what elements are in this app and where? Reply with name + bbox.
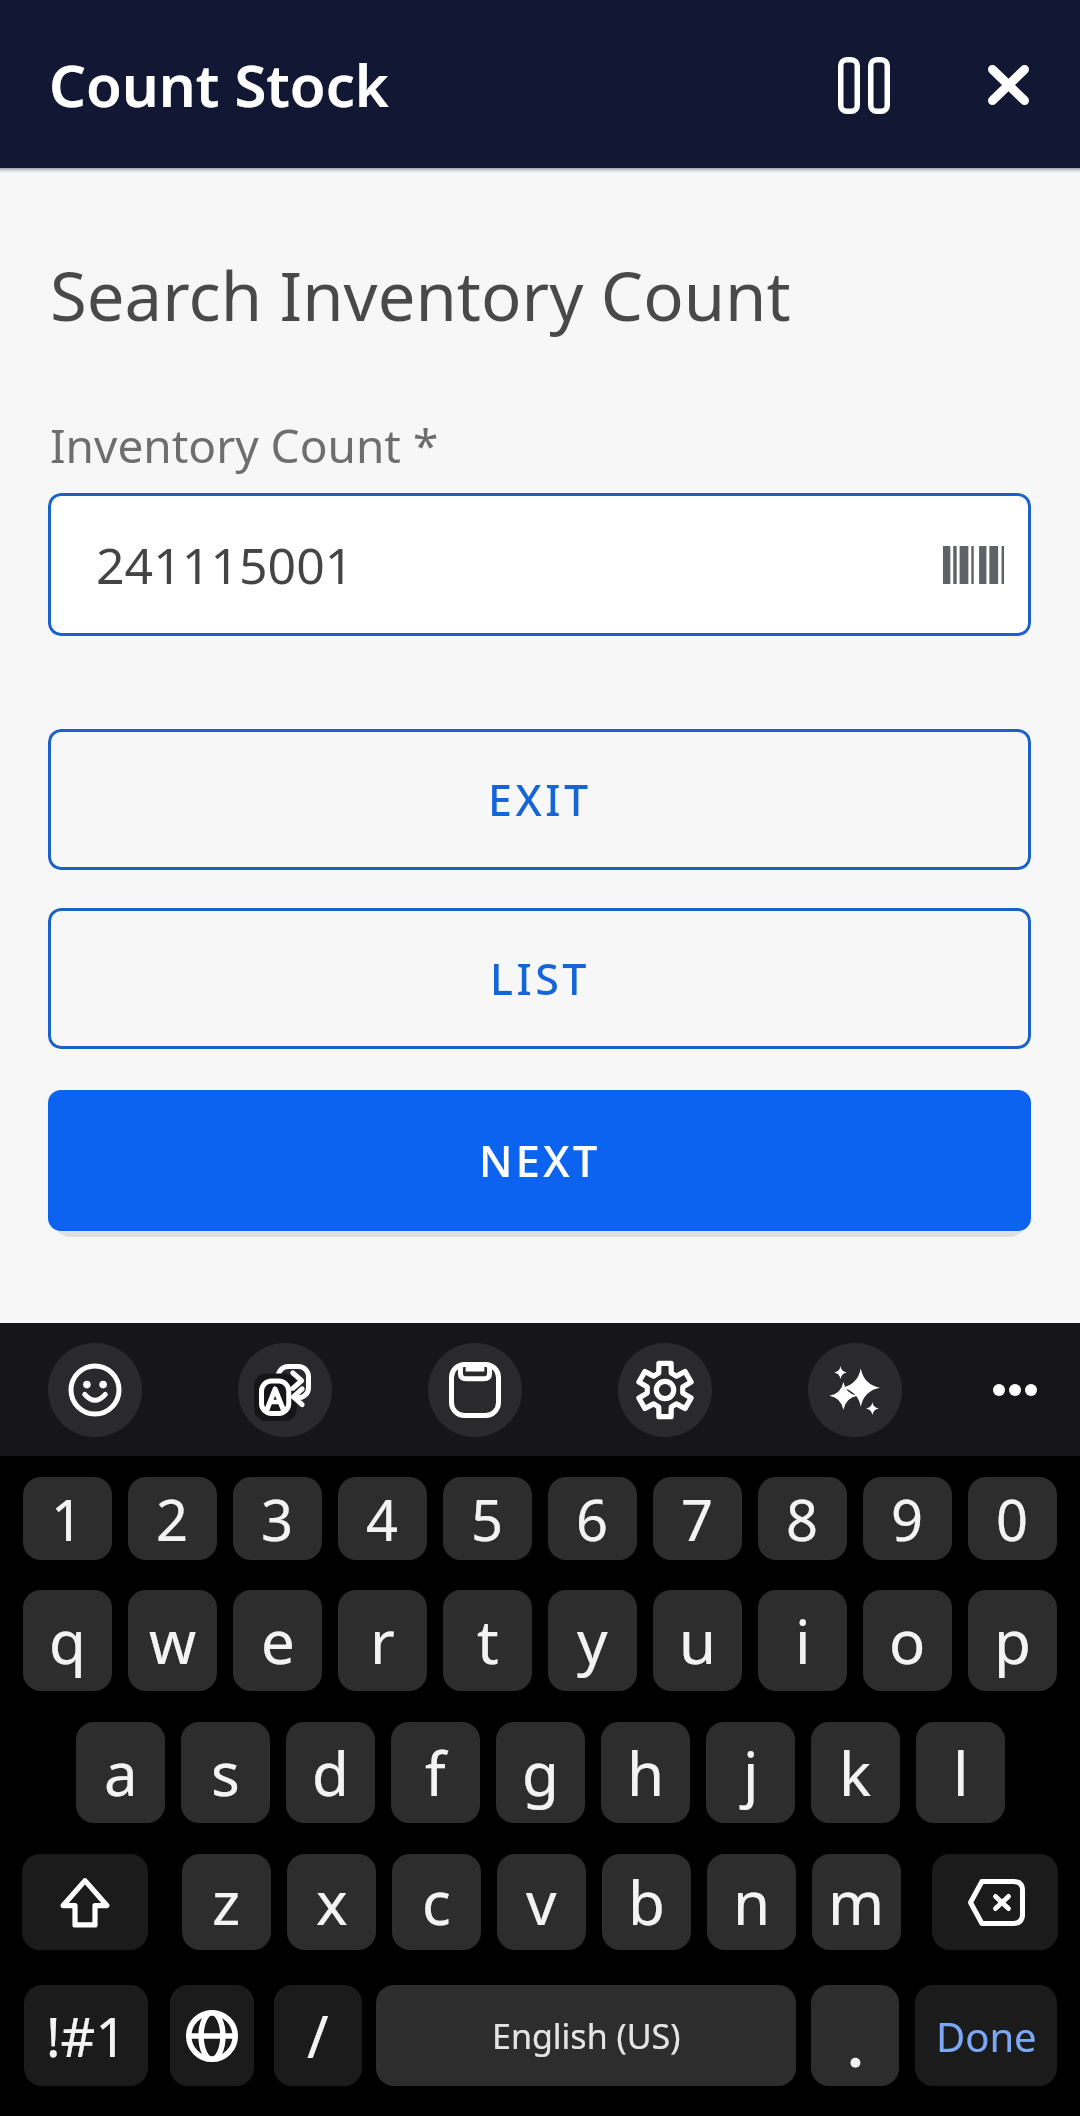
button[interactable]: Settings: [618, 1343, 712, 1437]
staticText: 1: [51, 1481, 84, 1557]
button[interactable]: l: [916, 1722, 1005, 1823]
button[interactable]: Close: [953, 30, 1063, 140]
button[interactable]: k: [811, 1722, 900, 1823]
staticText: NEXT: [479, 1131, 601, 1190]
staticText: w: [149, 1600, 197, 1682]
staticText: r: [370, 1600, 395, 1682]
staticText: k: [839, 1732, 872, 1814]
button[interactable]: Emoji: [48, 1343, 142, 1437]
button[interactable]: Assist: [808, 1343, 902, 1437]
button[interactable]: q: [23, 1590, 112, 1691]
staticText: 9: [891, 1481, 924, 1557]
staticText: Inventory Count *: [50, 414, 439, 477]
staticText: 2: [156, 1481, 189, 1557]
button[interactable]: 5: [443, 1477, 532, 1560]
staticText: Count Stock: [49, 45, 389, 124]
button[interactable]: x: [287, 1854, 376, 1950]
button[interactable]: 0: [968, 1477, 1057, 1560]
staticText: 8: [786, 1481, 819, 1557]
button[interactable]: a: [76, 1722, 165, 1823]
staticText: a: [104, 1732, 138, 1814]
staticText: z: [212, 1861, 241, 1943]
button[interactable]: More options: [968, 1343, 1062, 1437]
button[interactable]: English (US): [376, 1985, 796, 2086]
button[interactable]: z: [182, 1854, 271, 1950]
button[interactable]: d: [286, 1722, 375, 1823]
staticText: m: [828, 1861, 885, 1943]
button[interactable]: s: [181, 1722, 270, 1823]
button[interactable]: g: [496, 1722, 585, 1823]
button[interactable]: Scan barcode: [925, 517, 1021, 613]
button[interactable]: Shift: [22, 1854, 148, 1950]
button[interactable]: m: [812, 1854, 901, 1950]
staticText: 241115001: [96, 531, 354, 599]
staticText: g: [522, 1732, 559, 1814]
button[interactable]: 8: [758, 1477, 847, 1560]
staticText: b: [628, 1861, 665, 1943]
staticText: x: [316, 1861, 348, 1943]
button[interactable]: c: [392, 1854, 481, 1950]
button[interactable]: /: [274, 1985, 362, 2086]
staticText: y: [577, 1600, 608, 1682]
button[interactable]: r: [338, 1590, 427, 1691]
staticText: LIST: [490, 949, 590, 1008]
staticText: o: [889, 1600, 926, 1682]
button[interactable]: 241115001: [48, 493, 1031, 636]
staticText: u: [679, 1600, 717, 1682]
staticText: /: [307, 1996, 329, 2075]
staticText: v: [526, 1861, 557, 1943]
button[interactable]: Clipboard: [428, 1343, 522, 1437]
staticText: Done: [936, 2009, 1037, 2063]
button[interactable]: 9: [863, 1477, 952, 1560]
button[interactable]: y: [548, 1590, 637, 1691]
button[interactable]: Pause: [809, 30, 919, 140]
button[interactable]: o: [863, 1590, 952, 1691]
button[interactable]: t: [443, 1590, 532, 1691]
button[interactable]: Done: [915, 1985, 1057, 2086]
staticText: d: [312, 1732, 349, 1814]
button[interactable]: p: [968, 1590, 1057, 1691]
button[interactable]: j: [706, 1722, 795, 1823]
button[interactable]: 4: [338, 1477, 427, 1560]
staticText: Search Inventory Count: [50, 249, 791, 340]
staticText: c: [422, 1861, 451, 1943]
button[interactable]: 1: [23, 1477, 112, 1560]
button[interactable]: 2: [128, 1477, 217, 1560]
staticText: i: [795, 1600, 811, 1682]
staticText: 6: [576, 1481, 609, 1557]
button[interactable]: e: [233, 1590, 322, 1691]
button[interactable]: Period: [811, 1985, 899, 2086]
button[interactable]: NEXT: [48, 1090, 1031, 1231]
staticText: 3: [261, 1481, 294, 1557]
staticText: 5: [471, 1481, 504, 1557]
button[interactable]: f: [391, 1722, 480, 1823]
button[interactable]: n: [707, 1854, 796, 1950]
staticText: l: [953, 1732, 969, 1814]
button[interactable]: i: [758, 1590, 847, 1691]
staticText: English (US): [492, 2013, 681, 2059]
staticText: 7: [681, 1481, 714, 1557]
staticText: s: [211, 1732, 240, 1814]
staticText: j: [743, 1732, 759, 1814]
staticText: EXIT: [488, 770, 592, 829]
staticText: e: [261, 1600, 295, 1682]
button[interactable]: Switch language: [170, 1985, 254, 2086]
button[interactable]: 6: [548, 1477, 637, 1560]
staticText: h: [627, 1732, 665, 1814]
button[interactable]: v: [497, 1854, 586, 1950]
button[interactable]: 7: [653, 1477, 742, 1560]
button[interactable]: LIST: [48, 908, 1031, 1049]
button[interactable]: Backspace: [932, 1854, 1058, 1950]
staticText: 4: [366, 1481, 399, 1557]
button[interactable]: u: [653, 1590, 742, 1691]
button[interactable]: Translate: [238, 1343, 332, 1437]
button[interactable]: h: [601, 1722, 690, 1823]
button[interactable]: !#1: [24, 1985, 148, 2086]
button[interactable]: b: [602, 1854, 691, 1950]
button[interactable]: 3: [233, 1477, 322, 1560]
button[interactable]: w: [128, 1590, 217, 1691]
staticText: t: [477, 1600, 499, 1682]
staticText: q: [49, 1600, 86, 1682]
staticText: !#1: [46, 1999, 127, 2073]
button[interactable]: EXIT: [48, 729, 1031, 870]
